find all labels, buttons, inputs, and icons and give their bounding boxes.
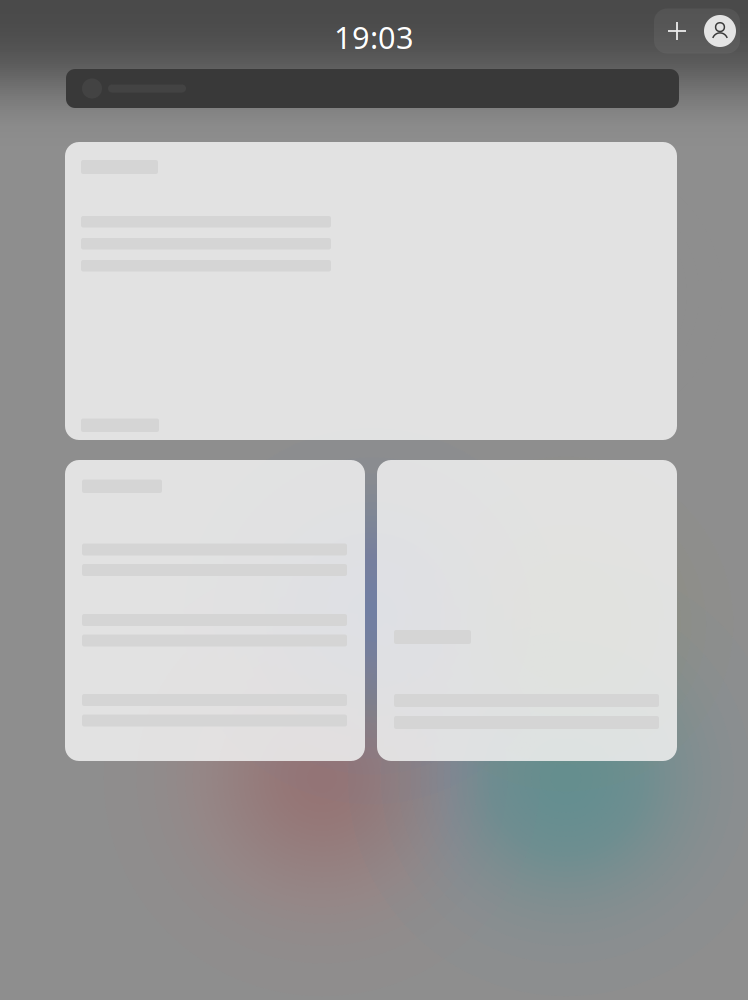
staticText: 19:03 <box>334 17 414 57</box>
button[interactable]: New chat <box>654 8 700 53</box>
button[interactable]: Profile <box>700 8 740 53</box>
button[interactable] <box>66 69 679 108</box>
